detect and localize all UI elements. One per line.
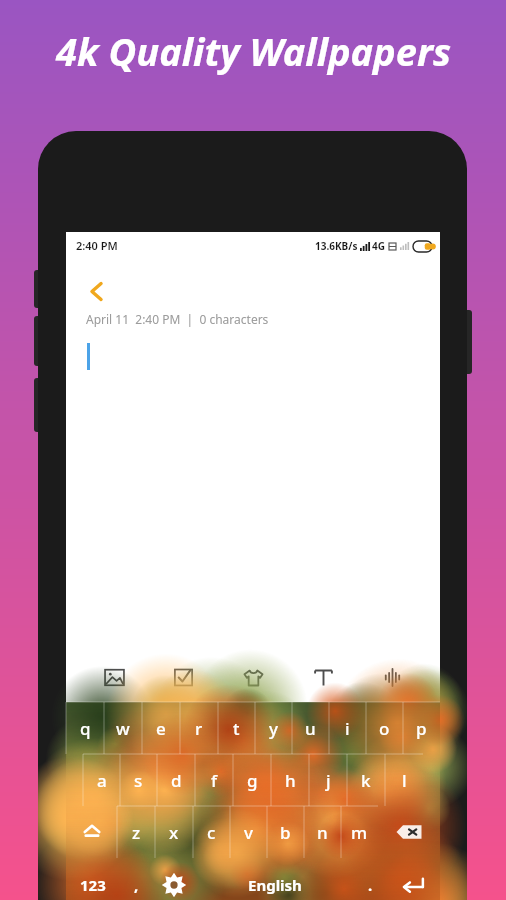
staticText: e	[156, 717, 166, 740]
button[interactable]: j	[309, 754, 347, 806]
button[interactable]: o	[366, 702, 403, 754]
button[interactable]: l	[385, 754, 423, 806]
staticText: h	[285, 769, 296, 792]
staticText: q	[80, 717, 91, 740]
button[interactable]: i	[329, 702, 366, 754]
button[interactable]: ,	[120, 858, 152, 900]
staticText: j	[326, 769, 331, 792]
button[interactable]: x	[155, 806, 193, 858]
staticText: y	[269, 717, 278, 740]
button[interactable]: Backspace	[378, 806, 440, 858]
button[interactable]: f	[195, 754, 233, 806]
staticText: c	[207, 821, 216, 844]
staticText: i	[345, 717, 350, 740]
staticText: u	[305, 717, 316, 740]
button[interactable]: Checklist	[161, 655, 205, 699]
button[interactable]: Insert image	[92, 655, 136, 699]
staticText: v	[244, 821, 253, 844]
button[interactable]: k	[347, 754, 385, 806]
button[interactable]: w	[104, 702, 142, 754]
button[interactable]: .	[354, 858, 386, 900]
staticText: 4G	[372, 239, 385, 253]
button[interactable]: z	[117, 806, 155, 858]
button[interactable]: Shift	[66, 806, 117, 858]
staticText: ,	[134, 875, 139, 895]
button[interactable]: p	[403, 702, 440, 754]
staticText: 123	[80, 875, 106, 895]
button[interactable]: Voice input	[370, 655, 414, 699]
button[interactable]: y	[255, 702, 292, 754]
button[interactable]: 123	[66, 858, 120, 900]
button[interactable]: n	[304, 806, 341, 858]
button[interactable]: b	[267, 806, 304, 858]
staticText: w	[116, 717, 130, 740]
staticText: m	[351, 821, 368, 844]
button[interactable]: u	[292, 702, 329, 754]
staticText: x	[169, 821, 179, 844]
button[interactable]: a	[83, 754, 120, 806]
staticText: a	[97, 769, 107, 792]
staticText: l	[402, 769, 407, 792]
staticText: s	[134, 769, 143, 792]
staticText: o	[379, 717, 390, 740]
staticText: k	[361, 769, 371, 792]
staticText: z	[132, 821, 141, 844]
staticText: April 11 2:40 PM | 0 characters	[86, 311, 269, 327]
staticText: r	[195, 717, 203, 740]
staticText: n	[317, 821, 328, 844]
button[interactable]: c	[193, 806, 230, 858]
button[interactable]: q	[66, 702, 104, 754]
button[interactable]: s	[120, 754, 157, 806]
staticText: .	[368, 875, 373, 895]
staticText: 2:40 PM	[76, 238, 118, 253]
button[interactable]: h	[271, 754, 309, 806]
staticText: f	[211, 769, 218, 792]
button[interactable]: t	[218, 702, 255, 754]
staticText: t	[233, 717, 240, 740]
button[interactable]: r	[180, 702, 218, 754]
button[interactable]: d	[157, 754, 195, 806]
staticText: 13.6KB/s	[315, 239, 358, 253]
button[interactable]: e	[142, 702, 180, 754]
staticText: 4k Quality Wallpapers	[56, 25, 451, 77]
button[interactable]: v	[230, 806, 267, 858]
button[interactable]: Keyboard settings	[152, 858, 195, 900]
button[interactable]: Skins	[231, 655, 275, 699]
staticText: g	[247, 769, 258, 792]
staticText: English	[248, 875, 302, 895]
button[interactable]: English	[195, 858, 354, 900]
button[interactable]: m	[341, 806, 378, 858]
button[interactable]: Back	[78, 273, 114, 309]
staticText: b	[280, 821, 291, 844]
staticText: p	[416, 717, 427, 740]
button[interactable]: Text format	[301, 655, 345, 699]
button[interactable]: g	[233, 754, 271, 806]
staticText: d	[171, 769, 182, 792]
button[interactable]: Enter	[386, 858, 440, 900]
